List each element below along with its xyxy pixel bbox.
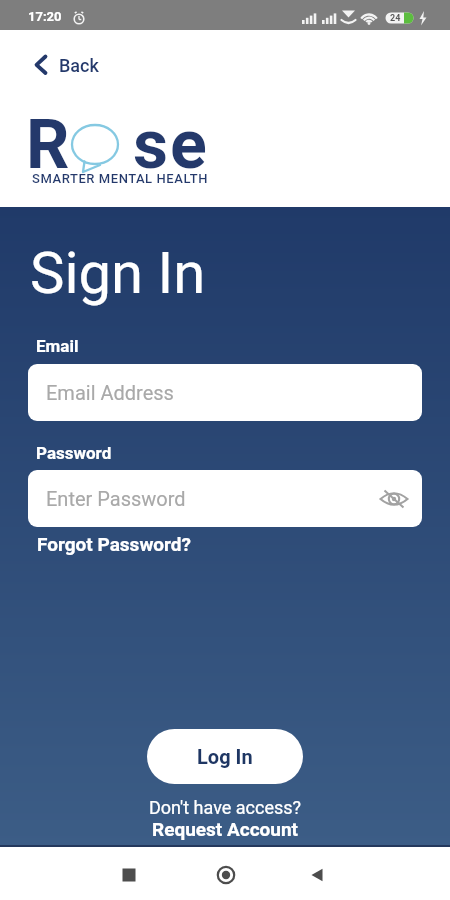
staticText: R: [26, 105, 70, 185]
button[interactable]: Request Account: [0, 817, 450, 841]
staticText: Password: [36, 443, 112, 463]
staticText: Sign In: [30, 239, 206, 307]
staticText: Back: [59, 55, 99, 76]
staticText: 17:20: [28, 9, 62, 24]
staticText: Email Address: [46, 381, 174, 404]
button[interactable]: Enter Password: [28, 470, 422, 527]
button[interactable]: [297, 856, 337, 896]
button[interactable]: [206, 856, 246, 896]
button[interactable]: Forgot Password?: [0, 0, 155, 22]
staticText: SMARTER MENTAL HEALTH: [32, 171, 208, 186]
staticText: Enter Password: [46, 487, 186, 510]
button[interactable]: Back: [24, 48, 114, 80]
button[interactable]: Email Address: [28, 364, 422, 421]
button[interactable]: Log In: [147, 729, 303, 784]
staticText: Request Account: [152, 818, 299, 840]
staticText: Don't have access?: [149, 797, 302, 817]
staticText: 24: [390, 13, 401, 24]
staticText: Email: [36, 336, 79, 356]
staticText: se: [133, 105, 209, 185]
button[interactable]: [109, 856, 149, 896]
staticText: Log In: [197, 745, 253, 768]
